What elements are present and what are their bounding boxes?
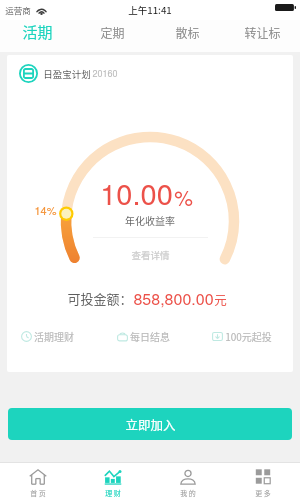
button[interactable]: 转让标 [225, 20, 300, 52]
button[interactable]: 查看详情 [121, 246, 180, 264]
button[interactable]: 定期 [75, 20, 150, 52]
staticText: 更 多 [255, 488, 271, 498]
staticText: 年化收益率 [125, 213, 175, 227]
staticText: 首 页 [30, 488, 46, 498]
staticText: 每日结息 [130, 329, 170, 343]
staticText: 立即加入 [125, 415, 176, 433]
staticText: 100元起投 [225, 329, 272, 343]
staticText: 可投金额： [67, 289, 133, 308]
staticText: 858,800.00 [133, 287, 214, 310]
staticText: 查看详情 [131, 248, 170, 262]
staticText: 转让标 [244, 24, 281, 41]
button[interactable]: More [225, 463, 300, 500]
staticText: 上午11:41 [128, 3, 172, 17]
button[interactable]: Finance [75, 463, 150, 500]
staticText: 14% [34, 202, 57, 218]
staticText: 定期 [100, 24, 125, 41]
staticText: 活期理财 [34, 329, 74, 343]
staticText: 散标 [175, 24, 200, 41]
button[interactable]: 散标 [150, 20, 225, 52]
staticText: 我 的 [180, 488, 196, 498]
staticText: 10.00 [100, 172, 173, 214]
button[interactable]: 活期 [0, 20, 75, 52]
button[interactable]: 立即加入 [8, 408, 292, 440]
staticText: 元 [214, 290, 227, 308]
staticText: 活期 [22, 21, 53, 43]
button[interactable]: Home [0, 463, 75, 500]
button[interactable]: Profile [150, 463, 225, 500]
staticText: 理 财 [105, 488, 121, 498]
staticText: % [174, 182, 193, 212]
staticText: 日盈宝计划 [43, 67, 91, 81]
staticText: 20160 [92, 67, 118, 80]
staticText: 运营商 [5, 4, 31, 16]
